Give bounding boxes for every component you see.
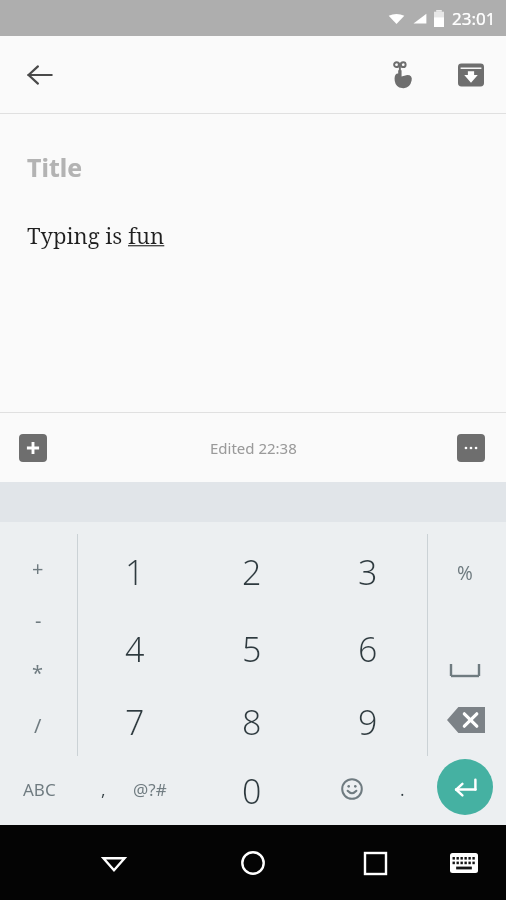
button[interactable]: Space [443,648,487,692]
button[interactable]: Emoji [330,767,374,811]
staticText: Title [27,150,83,184]
button[interactable]: Recent apps [349,837,401,889]
button[interactable]: 6 [324,621,412,677]
staticText: 0 [242,768,262,814]
button[interactable]: Backspace [440,694,492,746]
button[interactable]: @?# [118,769,182,809]
staticText: 3 [358,549,378,595]
button[interactable]: % [437,553,493,593]
staticText: 7 [125,699,145,745]
button[interactable]: Archive [446,50,496,100]
button[interactable]: . [370,769,434,809]
button[interactable]: * [10,652,66,692]
staticText: ABC [23,778,56,801]
button[interactable]: Enter [437,759,493,815]
button[interactable]: Home [227,837,279,889]
button[interactable]: 1 [91,544,179,600]
button[interactable]: / [10,705,66,745]
staticText: * [32,659,44,686]
staticText: 2 [242,549,262,595]
button[interactable]: 8 [208,694,296,750]
staticText: / [34,712,42,739]
button[interactable]: 9 [324,694,412,750]
button[interactable]: ABC [7,769,71,809]
button[interactable]: Back [14,49,66,101]
button[interactable]: , [71,769,135,809]
staticText: , [101,778,106,801]
button[interactable]: 2 [208,544,296,600]
button[interactable]: More options [448,425,494,471]
button[interactable]: 3 [324,544,412,600]
staticText: - [35,607,42,634]
staticText: 6 [358,626,378,672]
staticText: Edited 22:38 [210,438,297,458]
staticText: % [457,560,473,586]
staticText: fun [128,220,165,250]
staticText: . [400,778,405,801]
staticText: 1 [125,549,145,595]
staticText: Typing is [27,220,128,250]
button[interactable]: 0 [208,763,296,819]
button[interactable]: Back [88,837,140,889]
button[interactable]: Add [10,425,56,471]
button[interactable]: - [10,600,66,640]
button[interactable]: 7 [91,694,179,750]
staticText: 23:01 [452,7,496,30]
staticText: + [32,555,44,582]
staticText: 8 [242,699,262,745]
button[interactable]: Switch keyboard [440,839,488,887]
staticText: 9 [358,699,378,745]
button[interactable]: 4 [91,621,179,677]
staticText: 5 [242,626,262,672]
staticText: @?# [133,778,167,801]
button[interactable]: + [10,548,66,588]
button[interactable]: 5 [208,621,296,677]
staticText: 4 [125,626,145,672]
button[interactable]: Pin note [376,50,426,100]
